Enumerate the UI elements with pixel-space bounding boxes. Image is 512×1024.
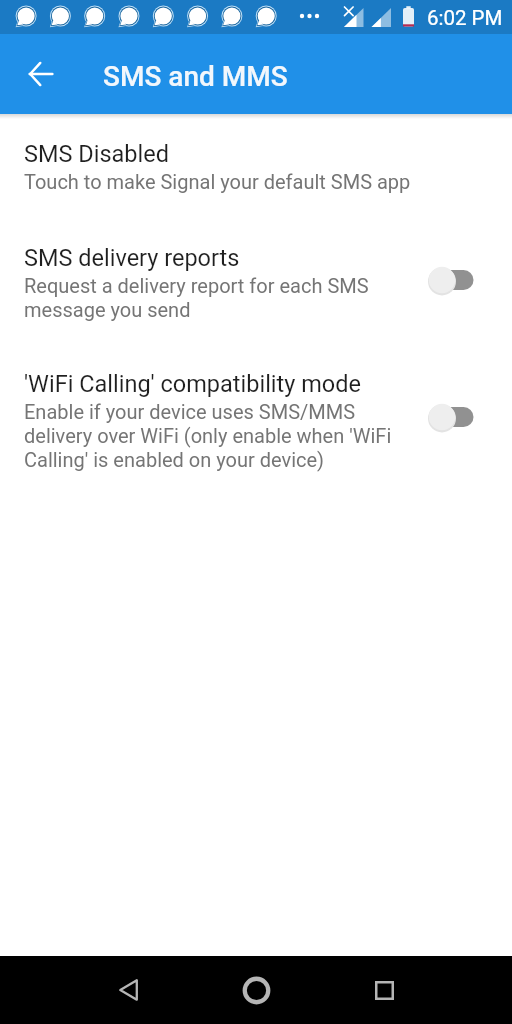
button[interactable]: SMS Disabled <box>0 124 512 196</box>
button[interactable]: 'WiFi Calling' compatibility mode <box>0 354 512 476</box>
staticText: 'WiFi Calling' compatibility mode <box>24 370 361 398</box>
staticText: Touch to make Signal your default SMS ap… <box>24 170 411 194</box>
button[interactable]: Toggle SMS delivery reports <box>414 256 488 304</box>
staticText: SMS Disabled <box>24 140 169 168</box>
button[interactable]: Recent apps <box>356 968 412 1012</box>
staticText: SMS and MMS <box>103 60 288 93</box>
staticText: 6:02 PM <box>427 6 503 30</box>
staticText: Enable if your device uses SMS/MMS deliv… <box>24 400 424 472</box>
button[interactable]: Home <box>228 968 284 1012</box>
button[interactable]: Back <box>100 968 156 1012</box>
button[interactable]: Navigate up <box>23 56 59 92</box>
staticText: SMS delivery reports <box>24 244 240 272</box>
button[interactable]: SMS delivery reports <box>0 228 512 326</box>
button[interactable]: Toggle 'WiFi Calling' compatibility mode <box>414 393 488 441</box>
staticText: Request a delivery report for each SMS m… <box>24 274 424 322</box>
